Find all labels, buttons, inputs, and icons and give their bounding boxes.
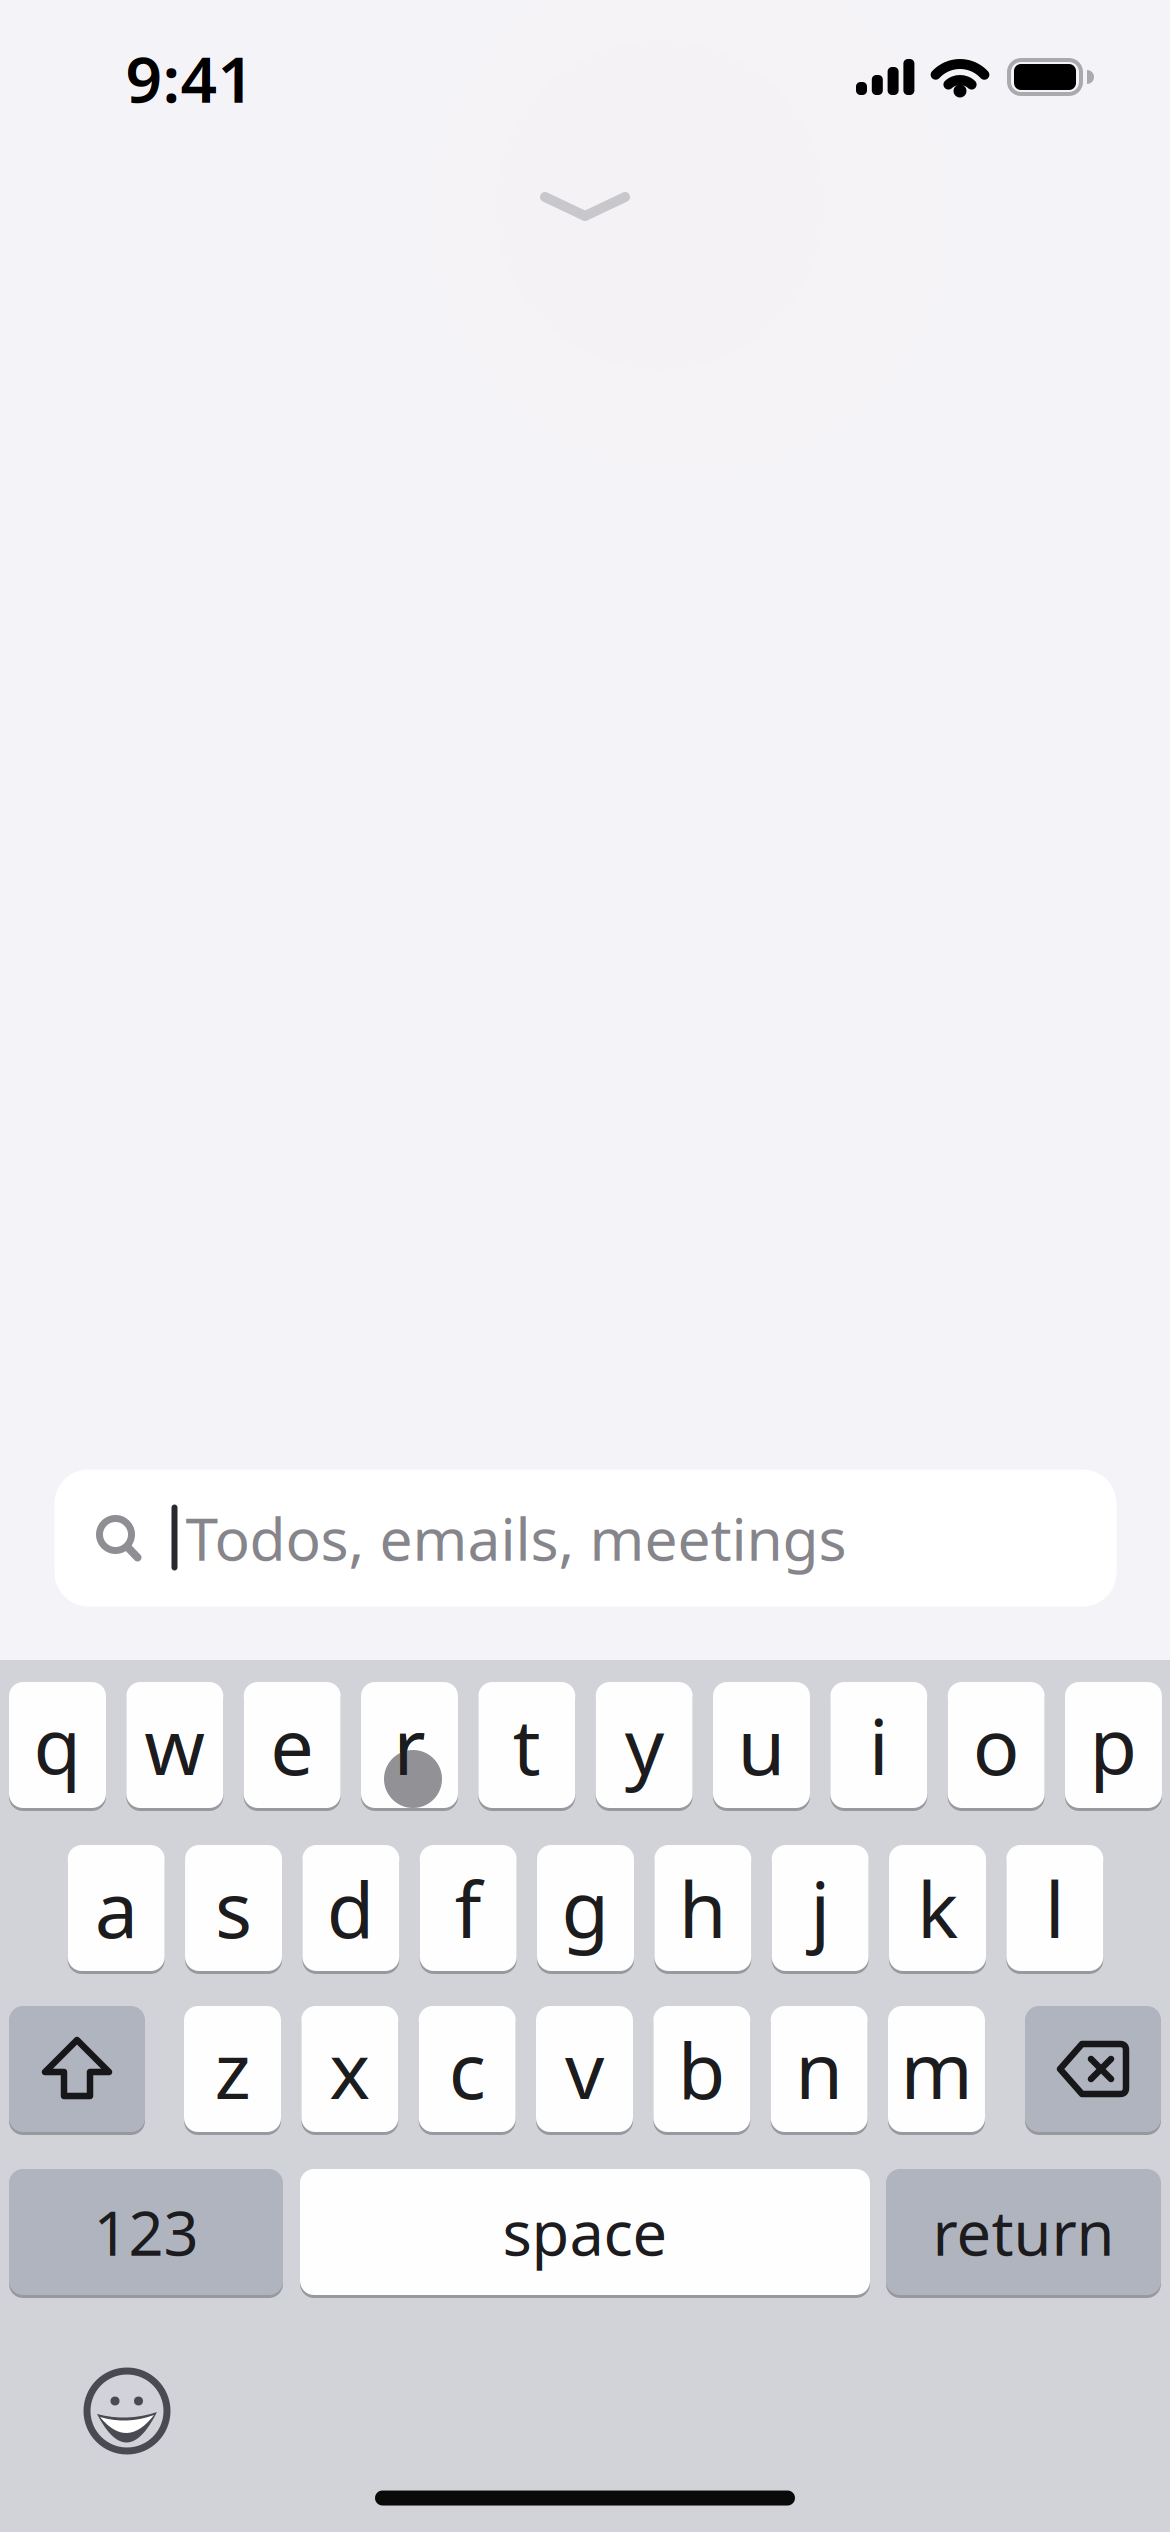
button[interactable]: s [185, 1843, 282, 1973]
button[interactable]: e [244, 1680, 341, 1810]
staticText: c [449, 2018, 486, 2120]
button[interactable]: u [713, 1680, 810, 1810]
staticText: 9:41 [125, 35, 254, 120]
staticText: t [513, 1694, 541, 1796]
staticText: d [327, 1857, 375, 1959]
staticText: z [214, 2018, 250, 2120]
staticText: space [502, 2191, 667, 2273]
button[interactable]: t [478, 1680, 575, 1810]
staticText: f [455, 1857, 482, 1959]
button[interactable]: Emoji [82, 2366, 172, 2456]
staticText: h [679, 1857, 727, 1959]
button[interactable]: 123 [9, 2167, 283, 2297]
staticText: n [795, 2018, 843, 2120]
button[interactable]: h [654, 1843, 751, 1973]
staticText: s [215, 1857, 252, 1959]
button[interactable]: v [536, 2004, 633, 2134]
staticText: k [917, 1857, 958, 1959]
staticText: l [1045, 1857, 1065, 1959]
staticText: m [900, 2018, 972, 2120]
button[interactable]: c [419, 2004, 516, 2134]
staticText: y [625, 1694, 664, 1796]
button[interactable]: d [302, 1843, 399, 1973]
staticText: q [33, 1694, 81, 1796]
staticText: r [393, 1694, 425, 1796]
staticText: g [561, 1857, 609, 1959]
button[interactable]: b [653, 2004, 750, 2134]
button[interactable]: g [537, 1843, 634, 1973]
button[interactable]: a [68, 1843, 165, 1973]
staticText: 123 [93, 2191, 198, 2273]
staticText: a [95, 1857, 138, 1959]
button[interactable]: Search todos, emails, meetings [54, 1469, 1116, 1606]
button[interactable]: Dismiss [540, 192, 630, 222]
staticText: u [737, 1694, 785, 1796]
button[interactable]: x [301, 2004, 398, 2134]
button[interactable]: z [184, 2004, 281, 2134]
staticText: o [973, 1694, 1020, 1796]
staticText: b [678, 2018, 726, 2120]
button[interactable]: Shift [9, 2004, 145, 2134]
staticText: j [810, 1857, 830, 1959]
button[interactable]: return [886, 2167, 1161, 2297]
button[interactable]: k [889, 1843, 986, 1973]
button[interactable]: Delete [1025, 2004, 1161, 2134]
staticText: r [393, 1694, 425, 1796]
staticText: return [932, 2191, 1114, 2273]
button[interactable]: y [596, 1680, 693, 1810]
button[interactable]: o [948, 1680, 1045, 1810]
staticText: Todos, emails, meetings [185, 1499, 846, 1577]
staticText: e [270, 1694, 314, 1796]
staticText: v [565, 2018, 604, 2120]
button[interactable]: l [1006, 1843, 1103, 1973]
button[interactable]: m [888, 2004, 985, 2134]
button[interactable]: j [772, 1843, 869, 1973]
button[interactable]: space [300, 2167, 870, 2297]
staticText: p [1089, 1694, 1137, 1796]
button[interactable]: r [361, 1680, 458, 1810]
button[interactable]: p [1065, 1680, 1162, 1810]
staticText: x [329, 2018, 370, 2120]
button[interactable]: f [420, 1843, 517, 1973]
button[interactable]: i [830, 1680, 927, 1810]
button[interactable]: q [9, 1680, 106, 1810]
button[interactable]: n [771, 2004, 868, 2134]
staticText: w [144, 1694, 205, 1796]
button[interactable]: w [126, 1680, 223, 1810]
staticText: i [869, 1694, 889, 1796]
